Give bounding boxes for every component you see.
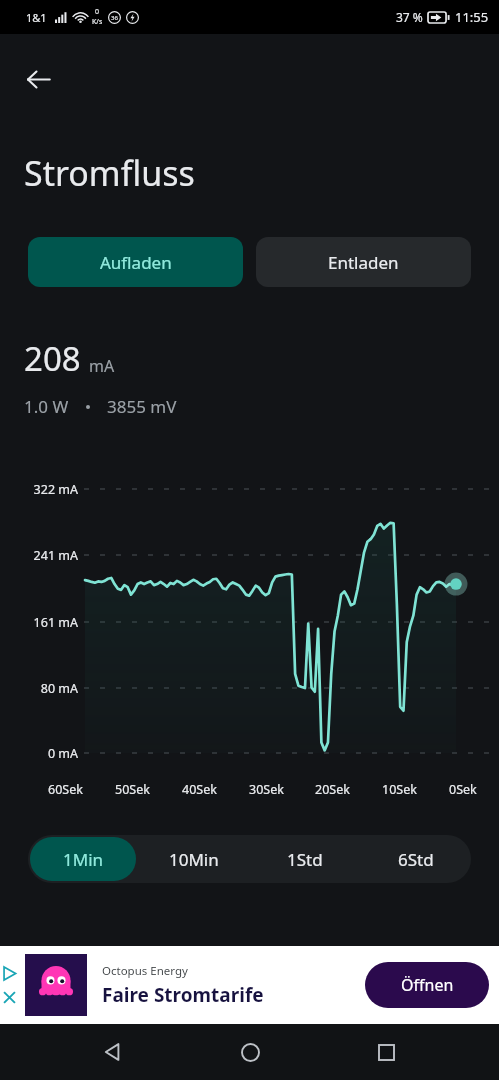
staticText: Aufladen bbox=[100, 251, 172, 274]
staticText: 1.0 W bbox=[24, 395, 69, 418]
staticText: 6Std bbox=[398, 848, 434, 871]
button[interactable]: 1Min bbox=[30, 837, 136, 881]
staticText: 1&1 bbox=[26, 10, 47, 25]
button[interactable]: 6Std bbox=[362, 837, 469, 881]
staticText: Öffnen bbox=[401, 974, 454, 996]
staticText: 3855 mV bbox=[107, 395, 177, 418]
staticText: 11:55 bbox=[455, 8, 489, 26]
button[interactable]: Öffnen bbox=[365, 962, 489, 1008]
staticText: 161 mA bbox=[0, 614, 78, 631]
staticText: 30Sek bbox=[249, 781, 284, 798]
staticText: Stromfluss bbox=[24, 150, 195, 196]
staticText: Entladen bbox=[328, 251, 399, 274]
staticText: 322 mA bbox=[0, 481, 78, 498]
staticText: 50Sek bbox=[115, 781, 150, 798]
staticText: 80 mA bbox=[0, 680, 78, 697]
staticText: 0Sek bbox=[449, 781, 477, 798]
staticText: 40Sek bbox=[182, 781, 217, 798]
button[interactable]: Back bbox=[16, 57, 60, 101]
staticText: 60Sek bbox=[48, 781, 83, 798]
staticText: 20Sek bbox=[315, 781, 350, 798]
staticText: 10Sek bbox=[382, 781, 417, 798]
staticText: 0 bbox=[95, 7, 100, 17]
button[interactable]: Entladen bbox=[256, 237, 471, 287]
staticText: mA bbox=[89, 355, 115, 377]
staticText: 208 bbox=[24, 336, 81, 381]
staticText: K/s bbox=[92, 17, 103, 27]
staticText: 36 bbox=[111, 14, 118, 22]
button[interactable]: Home bbox=[226, 1028, 274, 1076]
staticText: 37 % bbox=[396, 9, 423, 25]
button[interactable]: Aufladen bbox=[28, 237, 243, 287]
staticText: 1Min bbox=[63, 848, 104, 871]
staticText: 10Min bbox=[169, 848, 219, 871]
staticText: Octopus Energy bbox=[102, 963, 188, 979]
staticText: 0 mA bbox=[0, 745, 78, 762]
button[interactable]: Recents bbox=[362, 1028, 410, 1076]
staticText: 241 mA bbox=[0, 547, 78, 564]
staticText: 1Std bbox=[287, 848, 323, 871]
button[interactable]: 1Std bbox=[251, 837, 358, 881]
staticText: Faire Stromtarife bbox=[102, 982, 264, 1008]
button[interactable]: 10Min bbox=[140, 837, 247, 881]
button[interactable]: Back bbox=[89, 1028, 137, 1076]
